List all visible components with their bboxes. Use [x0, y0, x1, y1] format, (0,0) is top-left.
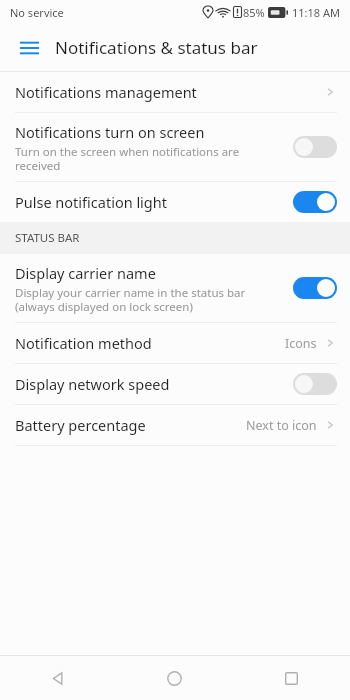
staticText: Display carrier name — [15, 263, 156, 283]
staticText: Icons — [285, 335, 317, 352]
button[interactable]: Recent apps — [233, 656, 350, 700]
staticText: Display your carrier name in the status … — [15, 285, 246, 314]
staticText: Notifications & status bar — [55, 36, 258, 59]
button[interactable]: Display network speed — [0, 364, 350, 404]
staticText: Turn on the screen when notifications ar… — [15, 144, 240, 173]
button[interactable]: Battery percentage — [0, 405, 350, 445]
button[interactable]: Back — [0, 656, 116, 700]
staticText: Notification method — [15, 333, 152, 353]
staticText: Pulse notification light — [15, 192, 167, 212]
button[interactable]: Menu — [14, 33, 44, 63]
staticText: 85% — [243, 5, 265, 20]
staticText: Display network speed — [15, 374, 170, 394]
staticText: Battery percentage — [15, 415, 146, 435]
staticText: 11:18 AM — [292, 5, 340, 20]
staticText: Notifications turn on screen — [15, 122, 205, 142]
button[interactable]: Pulse notification light — [0, 182, 350, 222]
button[interactable]: Home — [116, 656, 233, 700]
staticText: Notifications management — [15, 82, 197, 102]
staticText: No service — [10, 5, 64, 20]
staticText: STATUS BAR — [15, 230, 80, 246]
button[interactable]: Notifications management — [0, 72, 350, 112]
button[interactable]: Toggle off — [293, 373, 337, 395]
button[interactable]: Notifications turn on screen — [0, 113, 350, 181]
button[interactable]: Toggle on — [293, 191, 337, 213]
button[interactable]: Notification method — [0, 323, 350, 363]
staticText: Next to icon — [246, 417, 317, 434]
button[interactable]: Display carrier name — [0, 254, 350, 322]
button[interactable]: Toggle on — [293, 277, 337, 299]
button[interactable]: Toggle off — [293, 136, 337, 158]
